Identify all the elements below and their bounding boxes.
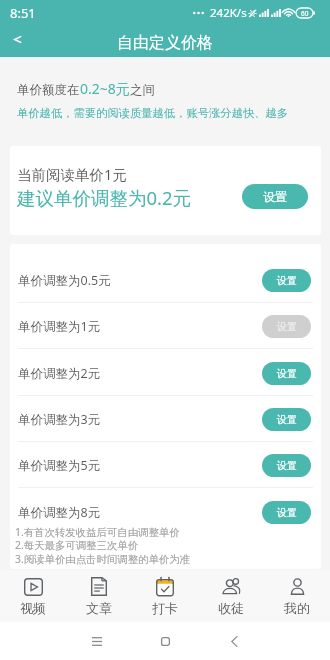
staticText: 单价额度在 [17,82,80,98]
staticText: 设置 [277,367,297,380]
button[interactable]: 设置 [262,454,311,477]
staticText: 当前阅读单价1元 [17,164,127,184]
staticText: 打卡 [152,600,178,616]
staticText: 单价调整为5元 [18,457,101,474]
staticText: 收徒 [218,600,244,616]
staticText: 设置 [277,506,297,519]
staticText: 242K/s [210,5,247,21]
button[interactable]: 单价调整为3元 [10,396,321,442]
button[interactable]: Back [212,622,256,660]
button[interactable]: 打卡 [132,570,198,622]
button[interactable]: 设置 [262,315,311,338]
staticText: 单价调整为0.5元 [18,272,111,289]
staticText: 1.有首次转发收益后可自由调整单价 2.每天最多可调整三次单价 3.阅读单价由点… [15,525,190,567]
staticText: 设置 [277,459,297,472]
staticText: 自由定义价格 [117,33,213,53]
button[interactable]: 设置 [242,184,308,209]
staticText: 设置 [277,413,297,426]
staticText: 单价调整为8元 [18,504,101,521]
button[interactable]: 设置 [262,408,311,431]
button[interactable]: 文章 [66,570,132,622]
staticText: 单价调整为3元 [18,411,101,428]
button[interactable]: 设置 [262,269,311,292]
staticText: 之间 [130,82,155,98]
button[interactable]: 单价调整为5元 [10,442,321,488]
button[interactable]: 设置 [262,501,311,524]
staticText: 60 [301,9,309,18]
staticText: 单价调整为1元 [18,318,101,335]
button[interactable]: 单价调整为2元 [10,350,321,396]
staticText: 单价越低，需要的阅读质量越低，账号涨分越快、越多 [17,106,289,120]
button[interactable]: 单价调整为0.5元 [10,257,321,303]
staticText: 我的 [284,600,310,616]
staticText: 单价调整为2元 [18,365,101,382]
staticText: 文章 [86,600,112,616]
staticText: 视频 [20,600,46,616]
button[interactable]: 单价调整为8元 [10,489,321,535]
staticText: 0.2~8元 [80,79,130,98]
button[interactable]: Recent apps [75,622,119,660]
button[interactable]: 单价调整为1元 [10,303,321,349]
button[interactable]: 收徒 [198,570,264,622]
button[interactable]: Back [0,26,36,57]
button[interactable]: Home [143,622,187,660]
staticText: 8:51 [10,4,36,22]
staticText: 设置 [277,320,297,333]
button[interactable]: 设置 [262,362,311,385]
staticText: 建议单价调整为0.2元 [17,185,192,210]
staticText: 设置 [277,274,297,287]
button[interactable]: 视频 [0,570,66,622]
button[interactable]: 我的 [264,570,330,622]
staticText: 设置 [263,189,287,204]
